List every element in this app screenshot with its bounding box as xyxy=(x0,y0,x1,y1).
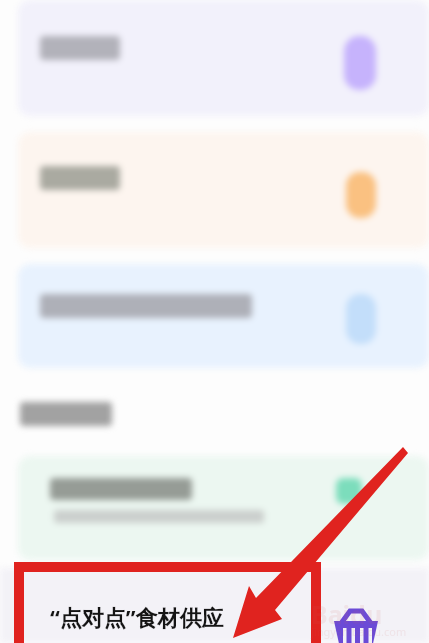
button[interactable] xyxy=(18,264,429,368)
button[interactable] xyxy=(18,0,429,116)
staticText: Baidu xyxy=(311,597,383,631)
button[interactable]: Cart xyxy=(333,608,381,643)
staticText: “点对点”食材供应 xyxy=(50,602,224,632)
button[interactable] xyxy=(18,456,429,560)
button[interactable] xyxy=(18,132,429,248)
staticText: jingyan.baidu.com xyxy=(311,624,407,639)
